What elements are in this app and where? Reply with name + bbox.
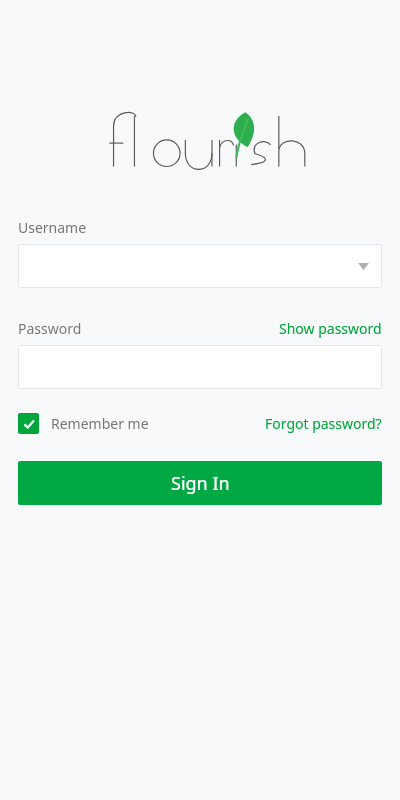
button[interactable]: Password field	[18, 345, 382, 389]
button[interactable]: Remember me	[18, 413, 149, 434]
staticText: Forgot password?	[265, 414, 382, 433]
staticText: Username	[18, 218, 87, 237]
staticText: Show password	[279, 319, 382, 338]
staticText: Remember me	[51, 414, 149, 433]
other: Flourish logo	[105, 107, 295, 177]
button[interactable]: Show password	[279, 319, 382, 338]
button[interactable]: Sign In	[18, 461, 382, 505]
button[interactable]: Forgot password?	[265, 414, 382, 433]
staticText: Sign In	[171, 471, 230, 496]
staticText: Password	[18, 319, 82, 338]
button[interactable]: Username field	[18, 244, 382, 288]
